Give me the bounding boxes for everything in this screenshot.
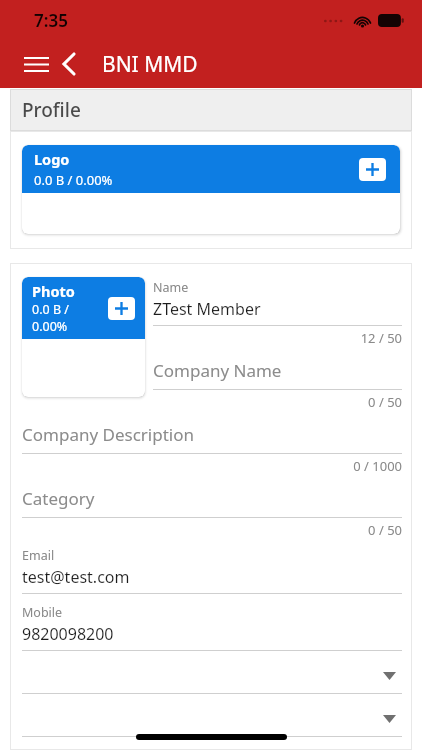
staticText: 0.00% (32, 318, 68, 335)
staticText: Email (22, 547, 55, 564)
staticText: 0 / 1000 (22, 457, 402, 475)
button[interactable]: Name (153, 279, 402, 326)
button[interactable]: Menu (18, 46, 54, 82)
button[interactable]: Select option (22, 702, 402, 737)
staticText: 12 / 50 (153, 329, 402, 347)
staticText: Logo (34, 149, 70, 169)
button[interactable]: Company Name (153, 359, 402, 390)
button[interactable]: Company Description (22, 423, 402, 454)
staticText: 0.0 B / (32, 301, 69, 318)
staticText: Mobile (22, 604, 63, 621)
button[interactable]: Photo (22, 277, 145, 397)
button[interactable]: Mobile (22, 604, 402, 651)
staticText: Photo (32, 281, 75, 301)
staticText: BNI MMD (102, 50, 198, 79)
staticText: 0.0 B / 0.00% (34, 171, 113, 189)
staticText: Company Name (153, 359, 282, 382)
staticText: Company Description (22, 423, 194, 446)
button[interactable]: Add (108, 297, 135, 320)
button[interactable]: Back (52, 47, 86, 81)
staticText: test@test.com (22, 566, 130, 588)
staticText: 0 / 50 (22, 521, 402, 539)
button[interactable]: Email (22, 547, 402, 594)
button[interactable]: Category (22, 487, 402, 518)
staticText: 0 / 50 (153, 393, 402, 411)
button[interactable]: Select option (22, 659, 402, 694)
button[interactable]: Logo (22, 145, 400, 234)
staticText: 9820098200 (22, 623, 114, 645)
staticText: Category (22, 487, 95, 510)
staticText: ZTest Member (153, 298, 261, 320)
staticText: Name (153, 279, 189, 296)
staticText: Profile (22, 97, 81, 123)
staticText: 7:35 (34, 9, 68, 32)
button[interactable]: Add (359, 158, 386, 181)
